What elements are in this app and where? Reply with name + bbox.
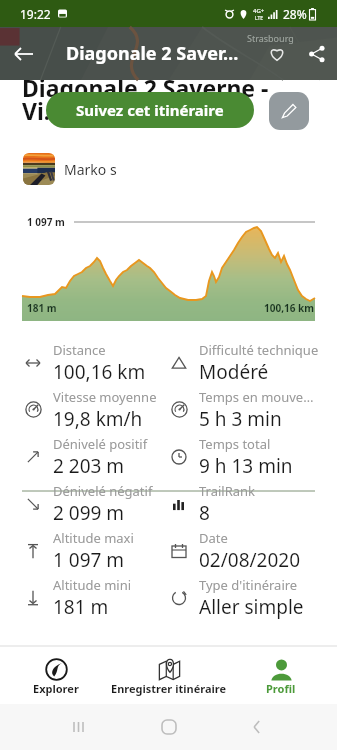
staticText: 1 097 m bbox=[53, 547, 125, 573]
staticText: TrailRank bbox=[199, 482, 256, 500]
button[interactable]: Share bbox=[297, 27, 337, 80]
button[interactable]: Vitesse moyenne bbox=[25, 386, 165, 433]
staticText: Altitude mini bbox=[53, 576, 132, 594]
staticText: Explorer bbox=[33, 681, 79, 696]
button[interactable]: Marko s bbox=[0, 152, 337, 195]
staticText: Vitesse moyenne bbox=[53, 388, 157, 406]
button[interactable]: Dénivelé positif bbox=[25, 433, 165, 480]
button[interactable]: Distance bbox=[25, 339, 165, 386]
staticText: 4G+ bbox=[253, 7, 265, 15]
staticText: Temps total bbox=[199, 435, 271, 453]
staticText: 9 h 13 min bbox=[199, 453, 293, 479]
staticText: 2 099 m bbox=[53, 500, 125, 526]
button[interactable]: Difficulté technique bbox=[171, 339, 333, 386]
button[interactable]: Favorite bbox=[257, 27, 297, 80]
staticText: 02/08/2020 bbox=[199, 547, 301, 573]
button[interactable]: Explorer bbox=[6, 647, 106, 704]
staticText: 19:22 bbox=[20, 6, 51, 22]
staticText: Suivez cet itinéraire bbox=[76, 100, 224, 120]
button[interactable]: Enregistrer itinéraire bbox=[104, 647, 234, 704]
staticText: Diagonale 2 Saver… bbox=[66, 41, 239, 66]
button[interactable]: Altitude mini bbox=[25, 574, 165, 621]
staticText: Enregistrer itinéraire bbox=[111, 681, 227, 696]
staticText: 2 203 m bbox=[53, 453, 125, 479]
staticText: Dénivelé positif bbox=[53, 435, 148, 453]
button[interactable]: Profil bbox=[231, 647, 331, 704]
button[interactable]: Type d'itinéraire bbox=[171, 574, 333, 621]
staticText: 100,16 km bbox=[264, 301, 314, 315]
staticText: 1 097 m bbox=[27, 215, 65, 229]
staticText: Aller simple bbox=[199, 594, 304, 620]
staticText: Dénivelé négatif bbox=[53, 482, 153, 500]
staticText: Difficulté technique bbox=[199, 341, 319, 359]
button[interactable]: Date bbox=[171, 527, 333, 574]
button[interactable]: Dénivelé négatif bbox=[25, 480, 165, 527]
staticText: 5 h 3 min bbox=[199, 406, 282, 432]
staticText: Temps en mouve… bbox=[199, 388, 314, 406]
button[interactable]: Altitude maxi bbox=[25, 527, 165, 574]
staticText: Date bbox=[199, 529, 228, 547]
staticText: Modéré bbox=[199, 359, 269, 385]
button[interactable]: Suivez cet itinéraire bbox=[46, 92, 254, 128]
button[interactable]: Temps total bbox=[171, 433, 333, 480]
button[interactable]: Temps en mouve… bbox=[171, 386, 333, 433]
staticText: 100,16 km bbox=[53, 359, 146, 385]
staticText: Strasbourg bbox=[247, 32, 294, 44]
button[interactable]: TrailRank bbox=[171, 480, 333, 527]
staticText: Type d'itinéraire bbox=[199, 576, 298, 594]
button[interactable]: Back bbox=[0, 27, 48, 80]
staticText: Altitude maxi bbox=[53, 529, 134, 547]
staticText: 8 bbox=[199, 500, 210, 526]
staticText: 19,8 km/h bbox=[53, 406, 143, 432]
staticText: Diagonale 2 Saverne - Vi… bbox=[22, 72, 269, 127]
staticText: 181 m bbox=[27, 301, 57, 315]
staticText: Marko s bbox=[64, 160, 117, 179]
staticText: Distance bbox=[53, 341, 106, 359]
staticText: 181 m bbox=[53, 594, 109, 620]
staticText: 28% bbox=[283, 6, 307, 22]
button[interactable]: Edit bbox=[269, 92, 309, 130]
staticText: Profil bbox=[266, 681, 296, 696]
staticText: LTE bbox=[255, 15, 264, 22]
